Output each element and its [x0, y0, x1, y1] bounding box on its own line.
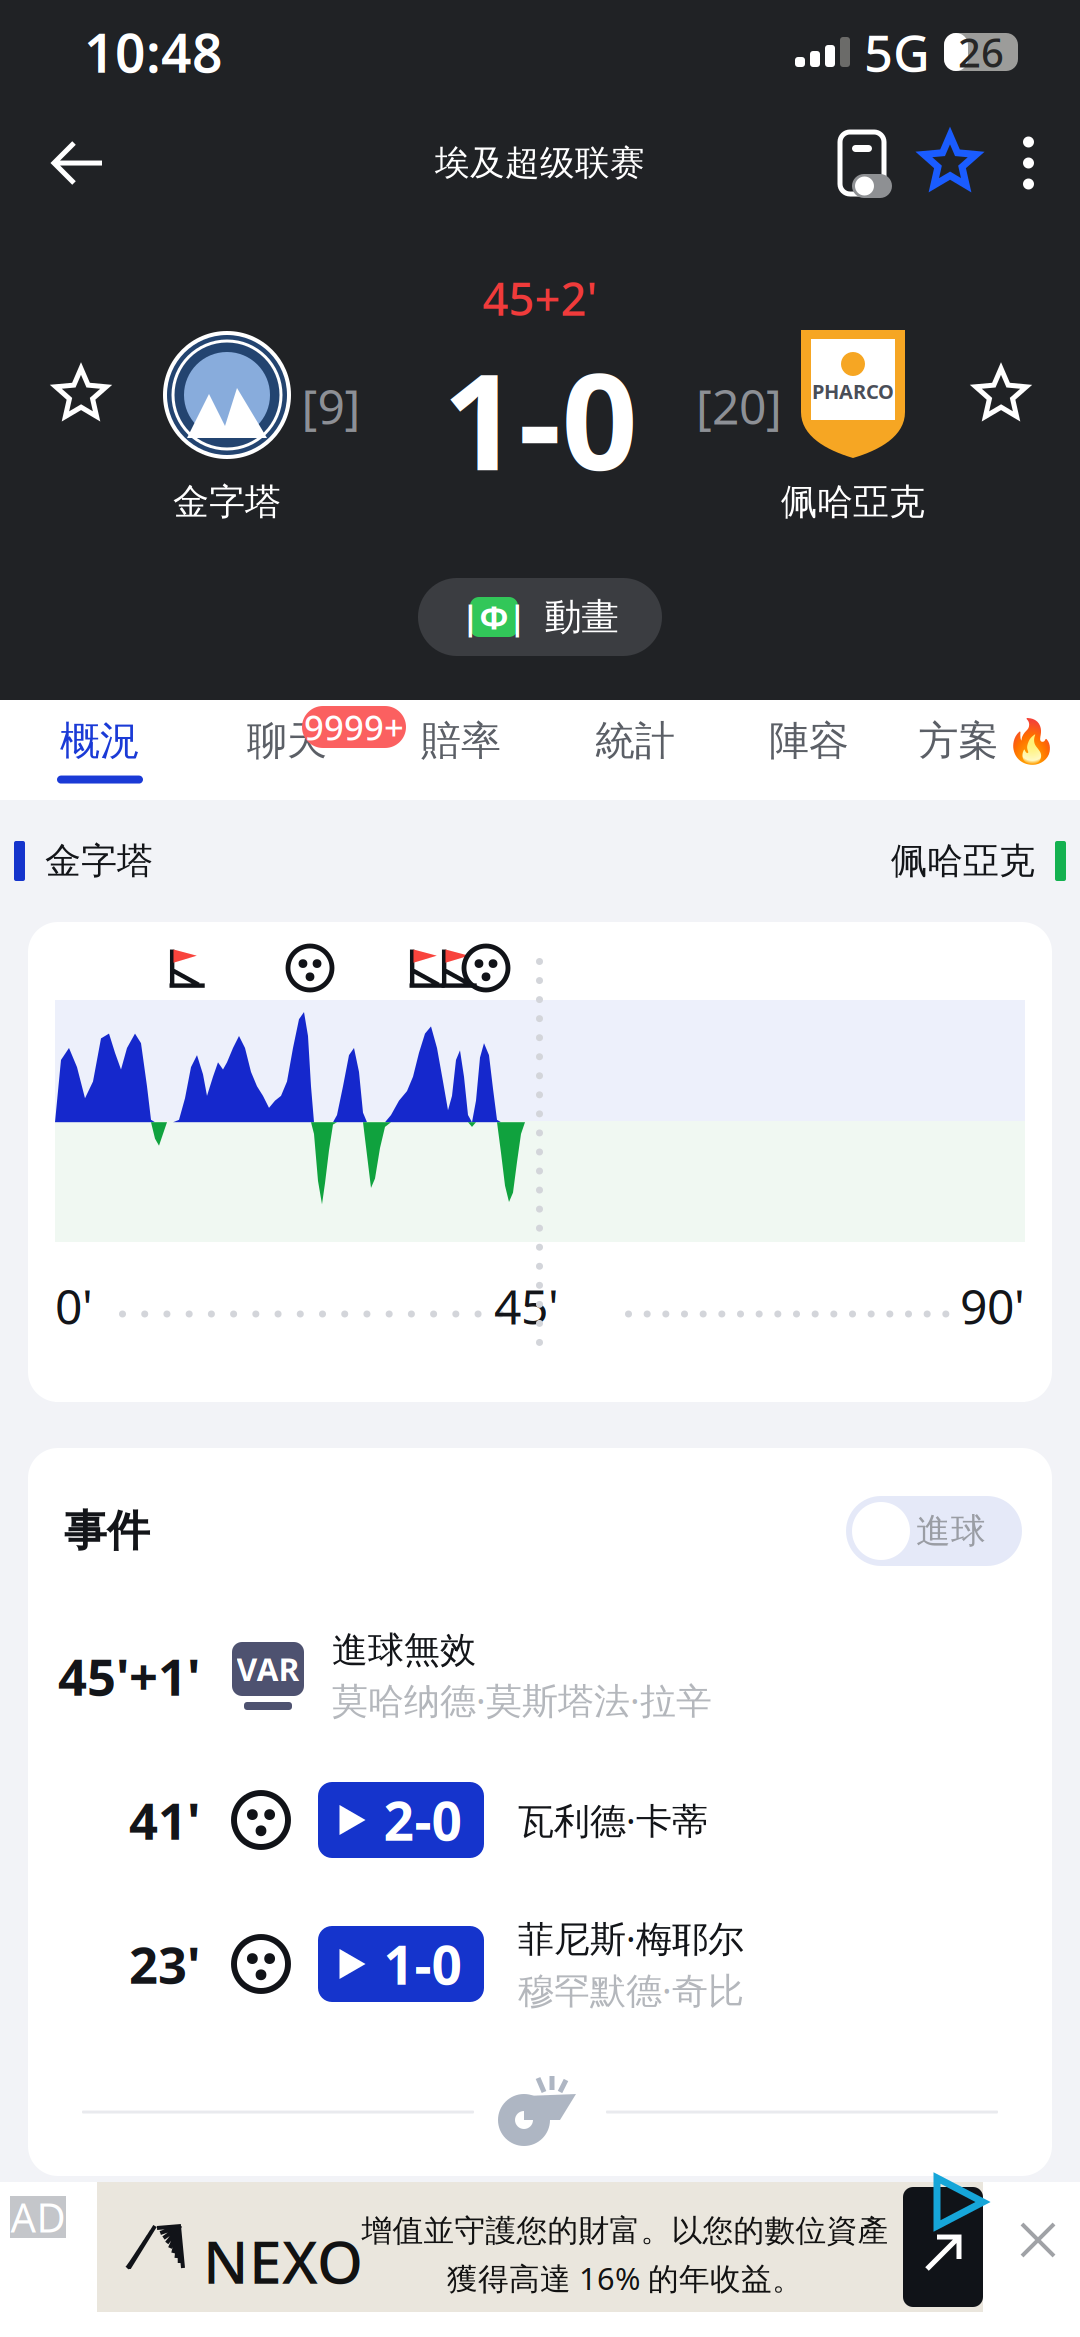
staticText: 🔥 — [1004, 717, 1057, 765]
staticText: 9999+ — [304, 704, 404, 750]
staticText: 進球 — [916, 1510, 986, 1552]
staticText: 統計 — [595, 716, 675, 765]
button[interactable]: 統計 — [548, 700, 722, 800]
staticText: 金字塔 — [173, 480, 281, 524]
staticText: 45' — [494, 1274, 559, 1338]
staticText: 45'+1' — [58, 1642, 200, 1710]
staticText: 陣容 — [769, 716, 849, 765]
button[interactable]: |Φ| — [418, 578, 662, 656]
staticText: 埃及超级联赛 — [435, 142, 645, 184]
staticText: 事件 — [64, 1505, 150, 1557]
staticText: 5G — [864, 18, 930, 86]
button[interactable]: Screen mode — [817, 113, 903, 213]
button[interactable]: NEXO — [97, 2182, 983, 2312]
staticText: 45+2' — [482, 268, 597, 328]
staticText: 莫哈纳德·莫斯塔法·拉辛 — [332, 1676, 712, 1724]
staticText: 26 — [958, 25, 1004, 78]
staticText: |Φ| — [461, 596, 526, 638]
button[interactable]: Back — [22, 111, 134, 215]
button[interactable]: 2-0 — [318, 1782, 484, 1858]
staticText: 穆罕默德·奇比 — [518, 1966, 744, 2014]
button[interactable]: 1-0 — [318, 1926, 484, 2002]
staticText: 90' — [960, 1274, 1025, 1338]
staticText: 瓦利德·卡蒂 — [518, 1796, 708, 1844]
staticText: NEXO — [203, 2222, 363, 2300]
button[interactable]: Close ad — [996, 2198, 1080, 2282]
staticText: 進球無效 — [332, 1628, 476, 1672]
button[interactable]: 進球 — [846, 1496, 1022, 1566]
staticText: VAR — [236, 1648, 299, 1690]
staticText: PHARCO — [812, 378, 894, 405]
button[interactable]: 聊天 — [200, 700, 374, 800]
staticText: 10:48 — [84, 17, 223, 87]
staticText: 1-0 — [383, 1929, 462, 1999]
button[interactable]: 賠率 — [374, 700, 548, 800]
staticText: 方案 — [918, 716, 998, 765]
staticText: 1-0 — [442, 330, 637, 507]
staticText: 菲尼斯·梅耶尔 — [518, 1914, 744, 1962]
button[interactable]: Favorite 佩哈亞克 — [946, 340, 1056, 450]
button[interactable]: More options — [997, 120, 1060, 205]
button[interactable]: Favorite — [903, 116, 997, 210]
button[interactable]: 陣容 — [722, 700, 896, 800]
staticText: 增值並守護您的財富。以您的數位資產 — [361, 2212, 888, 2250]
staticText: 獲得高達 16% 的年收益。 — [447, 2258, 803, 2298]
staticText: 金字塔 — [45, 839, 153, 883]
staticText: 聊天 — [247, 716, 327, 765]
staticText: 0' — [55, 1274, 93, 1338]
staticText: 2-0 — [383, 1785, 462, 1855]
button[interactable]: Favorite 金字塔 — [26, 340, 136, 450]
staticText: 23' — [129, 1930, 200, 1998]
staticText: 動畫 — [544, 594, 618, 640]
button[interactable]: 方案 — [896, 700, 1080, 800]
staticText: 佩哈亞克 — [781, 480, 925, 524]
staticText: 賠率 — [421, 716, 501, 765]
staticText: AD — [10, 2190, 65, 2243]
staticText: [9] — [301, 374, 360, 438]
staticText: 41' — [129, 1786, 200, 1854]
staticText: [20] — [696, 374, 782, 438]
staticText: 佩哈亞克 — [891, 839, 1035, 883]
button[interactable]: 概況 — [0, 700, 200, 800]
staticText: 概況 — [60, 716, 140, 765]
